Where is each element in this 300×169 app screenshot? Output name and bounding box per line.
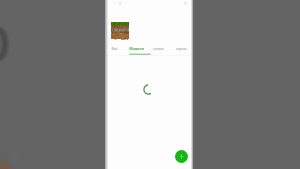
button[interactable]: Minecraft <box>111 22 129 39</box>
staticText: Модели <box>129 46 144 51</box>
staticText: скины <box>153 46 164 51</box>
button[interactable]: Всё <box>103 44 125 53</box>
button[interactable]: Add <box>175 150 188 163</box>
button[interactable]: Модели <box>125 44 147 53</box>
button[interactable]: карты <box>170 44 193 53</box>
staticText: карты <box>176 46 187 51</box>
button[interactable]: скины <box>147 44 170 53</box>
staticText: Всё <box>111 46 118 51</box>
